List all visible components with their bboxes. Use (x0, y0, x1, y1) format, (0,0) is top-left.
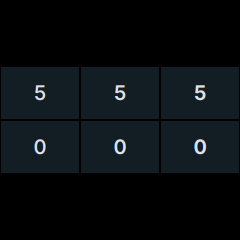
staticText: 0 (113, 135, 126, 159)
staticText: 5 (34, 81, 46, 105)
staticText: 5 (114, 81, 126, 105)
staticText: 0 (193, 135, 206, 159)
staticText: 0 (33, 135, 46, 159)
staticText: 5 (194, 81, 206, 105)
